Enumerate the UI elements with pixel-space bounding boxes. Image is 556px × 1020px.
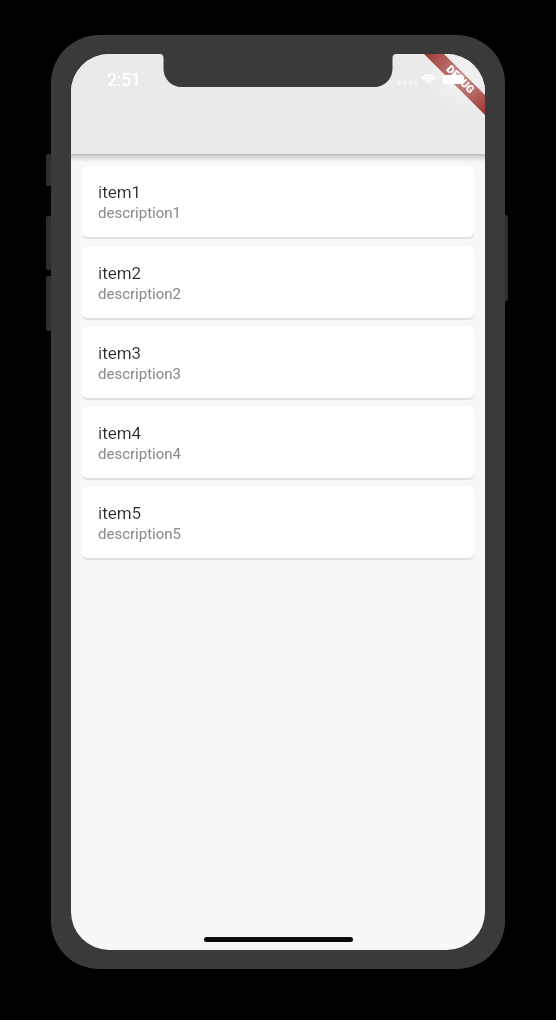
button[interactable]: item4 xyxy=(82,407,474,478)
staticText: item3 xyxy=(98,343,142,363)
staticText: description3 xyxy=(98,365,181,383)
button[interactable]: item2 xyxy=(82,247,474,318)
button[interactable]: item5 xyxy=(82,487,474,558)
staticText: DEBUG xyxy=(444,63,478,96)
staticText: item5 xyxy=(98,503,142,523)
staticText: description5 xyxy=(98,525,181,543)
staticText: item1 xyxy=(98,182,142,202)
button[interactable]: item3 xyxy=(82,327,474,398)
staticText: description2 xyxy=(98,285,181,303)
staticText: description1 xyxy=(98,204,181,222)
staticText: item2 xyxy=(98,263,142,283)
staticText: 2:51 xyxy=(107,70,141,91)
button[interactable]: item1 xyxy=(82,166,474,237)
staticText: item4 xyxy=(98,423,142,443)
other: Home xyxy=(204,937,353,942)
staticText: description4 xyxy=(98,445,181,463)
